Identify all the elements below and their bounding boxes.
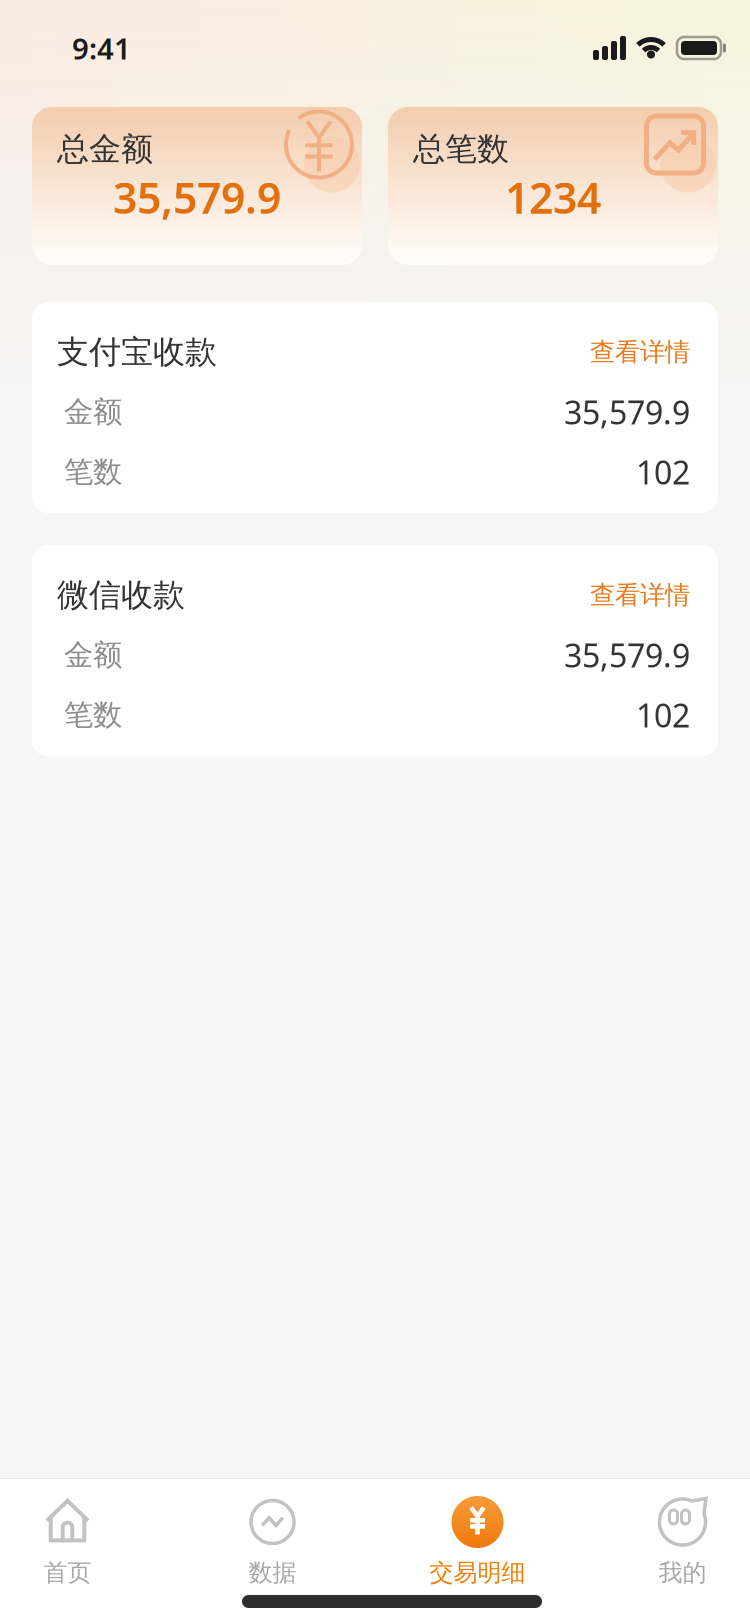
staticText: 交易明细 bbox=[429, 1558, 525, 1587]
staticText: 我的 bbox=[658, 1558, 706, 1587]
button[interactable]: 查看详情 bbox=[590, 336, 690, 367]
staticText: 微信收款 bbox=[57, 575, 185, 615]
button[interactable]: 查看详情 bbox=[590, 579, 690, 610]
staticText: 查看详情 bbox=[590, 579, 690, 610]
staticText: 35,579.9 bbox=[113, 169, 281, 225]
staticText: 查看详情 bbox=[590, 336, 690, 367]
staticText: 支付宝收款 bbox=[57, 332, 217, 372]
staticText: 1234 bbox=[505, 169, 601, 225]
staticText: 102 bbox=[636, 694, 690, 736]
staticText: 102 bbox=[636, 451, 690, 493]
staticText: 数据 bbox=[248, 1558, 296, 1587]
staticText: 总笔数 bbox=[413, 129, 509, 169]
button[interactable]: 数据 bbox=[205, 1496, 339, 1587]
staticText: 总金额 bbox=[57, 129, 153, 169]
staticText: 笔数 bbox=[64, 697, 122, 733]
button[interactable]: 我的 bbox=[615, 1496, 749, 1587]
staticText: 35,579.9 bbox=[564, 634, 690, 676]
staticText: 9:41 bbox=[72, 28, 131, 67]
staticText: 金额 bbox=[64, 394, 122, 430]
staticText: 金额 bbox=[64, 637, 122, 673]
button[interactable]: 首页 bbox=[0, 1496, 134, 1587]
staticText: 笔数 bbox=[64, 454, 122, 490]
staticText: 35,579.9 bbox=[564, 391, 690, 433]
staticText: 首页 bbox=[43, 1558, 91, 1587]
button[interactable]: 交易明细 bbox=[410, 1496, 544, 1587]
